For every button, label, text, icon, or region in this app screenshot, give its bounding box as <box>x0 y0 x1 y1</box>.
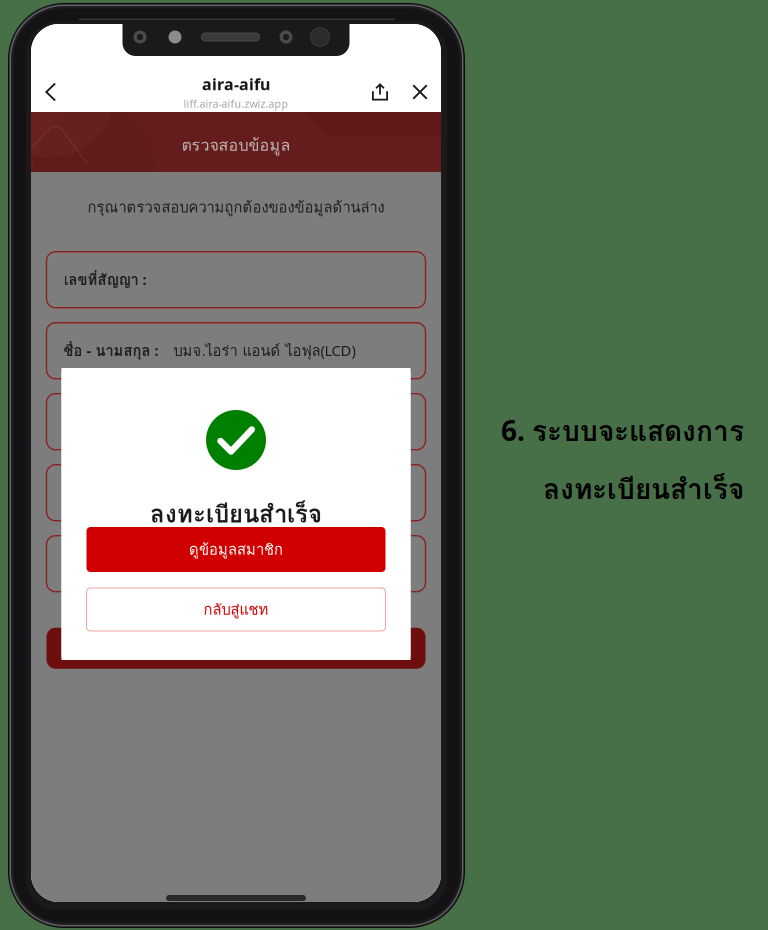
button[interactable]: ดูข้อมูลสมาชิก <box>86 527 385 572</box>
button[interactable]: กลับสู่แชท <box>86 588 385 631</box>
staticText: ลงทะเบียนสำเร็จ <box>150 495 322 533</box>
staticText: liff.aira-aifu.zwiz.app <box>183 96 288 111</box>
staticText: บมจ.ไอร่า แอนด์ ไอฟุล(LCD) <box>158 339 355 362</box>
button[interactable]: Close <box>401 69 439 115</box>
staticText: เลขที่สัญญา : <box>63 268 146 291</box>
staticText: ดูข้อมูลสมาชิก <box>189 538 283 561</box>
button[interactable]: Share <box>361 69 399 115</box>
button[interactable]: Back <box>29 69 73 115</box>
staticText: ตรวจสอบข้อมูล <box>181 133 290 157</box>
staticText: 6. ระบบจะแสดงการ <box>501 409 744 453</box>
staticText: ชื่อ - นามสกุล : <box>63 339 158 362</box>
staticText: aira-aifu <box>202 73 270 94</box>
staticText: กรุณาตรวจสอบความถูกต้องของข้อมูลด้านล่าง <box>87 196 384 219</box>
staticText: ลงทะเบียนสำเร็จ <box>543 467 744 511</box>
staticText: กลับสู่แชท <box>203 598 268 621</box>
